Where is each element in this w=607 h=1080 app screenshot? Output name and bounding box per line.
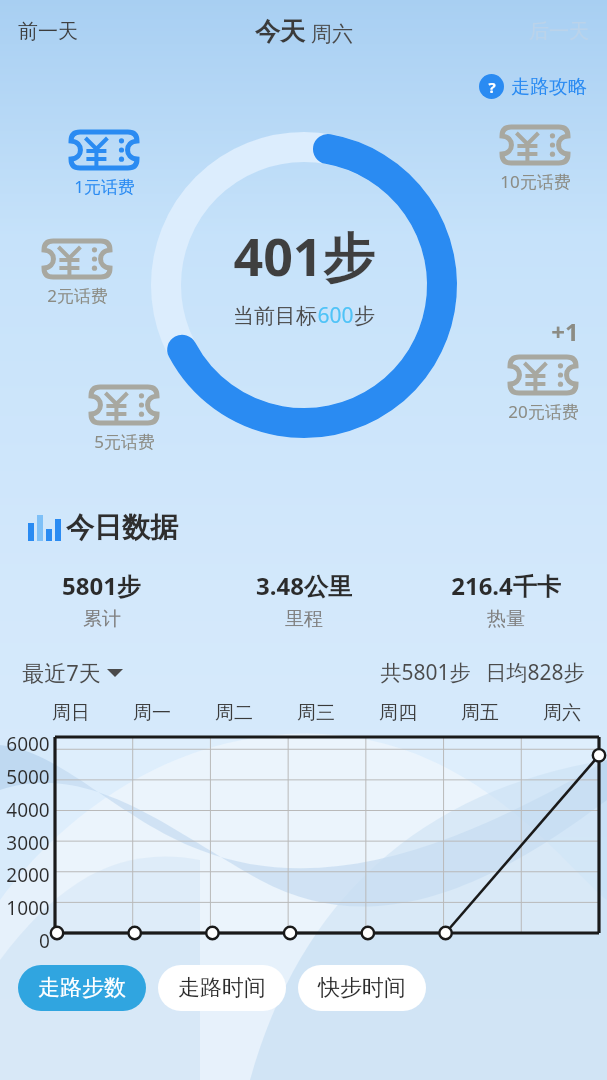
staticText: 周六 [543,701,581,725]
staticText: 今日数据 [66,510,178,545]
other: Help [479,74,504,99]
staticText: 2元话费 [47,284,108,307]
staticText: 0 [39,928,50,954]
staticText: 5000 [6,764,50,790]
button[interactable]: 20元话费 [501,348,585,427]
staticText: 周四 [379,701,417,725]
staticText: 走路步数 [38,974,126,1002]
staticText: 今天 [255,16,305,47]
staticText: 周三 [297,701,335,725]
staticText: 走路时间 [178,974,266,1002]
staticText: 600 [317,301,354,330]
staticText: 3.48公里 [256,569,352,602]
staticText: 216.4千卡 [451,569,561,602]
button[interactable]: Help [467,68,599,105]
staticText: 走路攻略 [511,75,587,99]
staticText: 周二 [215,701,253,725]
staticText: 周六 [311,21,353,47]
button[interactable]: 后一天 [517,11,601,52]
staticText: 周五 [461,701,499,725]
staticText: 2000 [6,862,50,888]
staticText: 5801步 [62,569,141,602]
staticText: 日均828步 [485,658,585,687]
button[interactable]: 快步时间 [298,965,426,1011]
staticText: 共5801步 [380,658,471,687]
staticText: +1 [551,315,579,348]
staticText: 周日 [52,701,90,725]
staticText: 当前目标 [233,303,317,329]
staticText: 最近7天 [22,657,101,687]
button[interactable]: 最近7天 [22,653,123,691]
staticText: 20元话费 [508,400,579,423]
staticText: 10元话费 [500,170,571,193]
staticText: 热量 [487,607,525,631]
button[interactable]: 216.4千卡 [405,569,607,631]
staticText: 快步时间 [318,974,406,1002]
button[interactable]: 2元话费 [35,232,119,311]
staticText: 4000 [6,797,50,823]
staticText: 前一天 [18,19,78,44]
staticText: 周一 [133,701,171,725]
staticText: 后一天 [529,19,589,44]
staticText: 累计 [83,607,121,631]
staticText: 里程 [285,607,323,631]
button[interactable]: 走路步数 [18,965,146,1011]
button[interactable]: 5801步 [0,569,203,631]
staticText: ? [488,77,496,97]
button[interactable]: 1元话费 [62,123,146,202]
button[interactable]: 10元话费 [493,118,577,197]
staticText: 3000 [6,830,50,856]
staticText: 步 [354,303,375,329]
button[interactable]: 5元话费 [82,378,166,457]
button[interactable]: 走路时间 [158,965,286,1011]
button[interactable]: 3.48公里 [203,569,405,631]
staticText: 1000 [6,895,50,921]
staticText: 6000 [6,731,50,757]
staticText: 5元话费 [94,430,155,453]
staticText: 1元话费 [74,175,135,198]
button[interactable]: 前一天 [6,11,90,52]
staticText: 401步 [233,220,375,291]
